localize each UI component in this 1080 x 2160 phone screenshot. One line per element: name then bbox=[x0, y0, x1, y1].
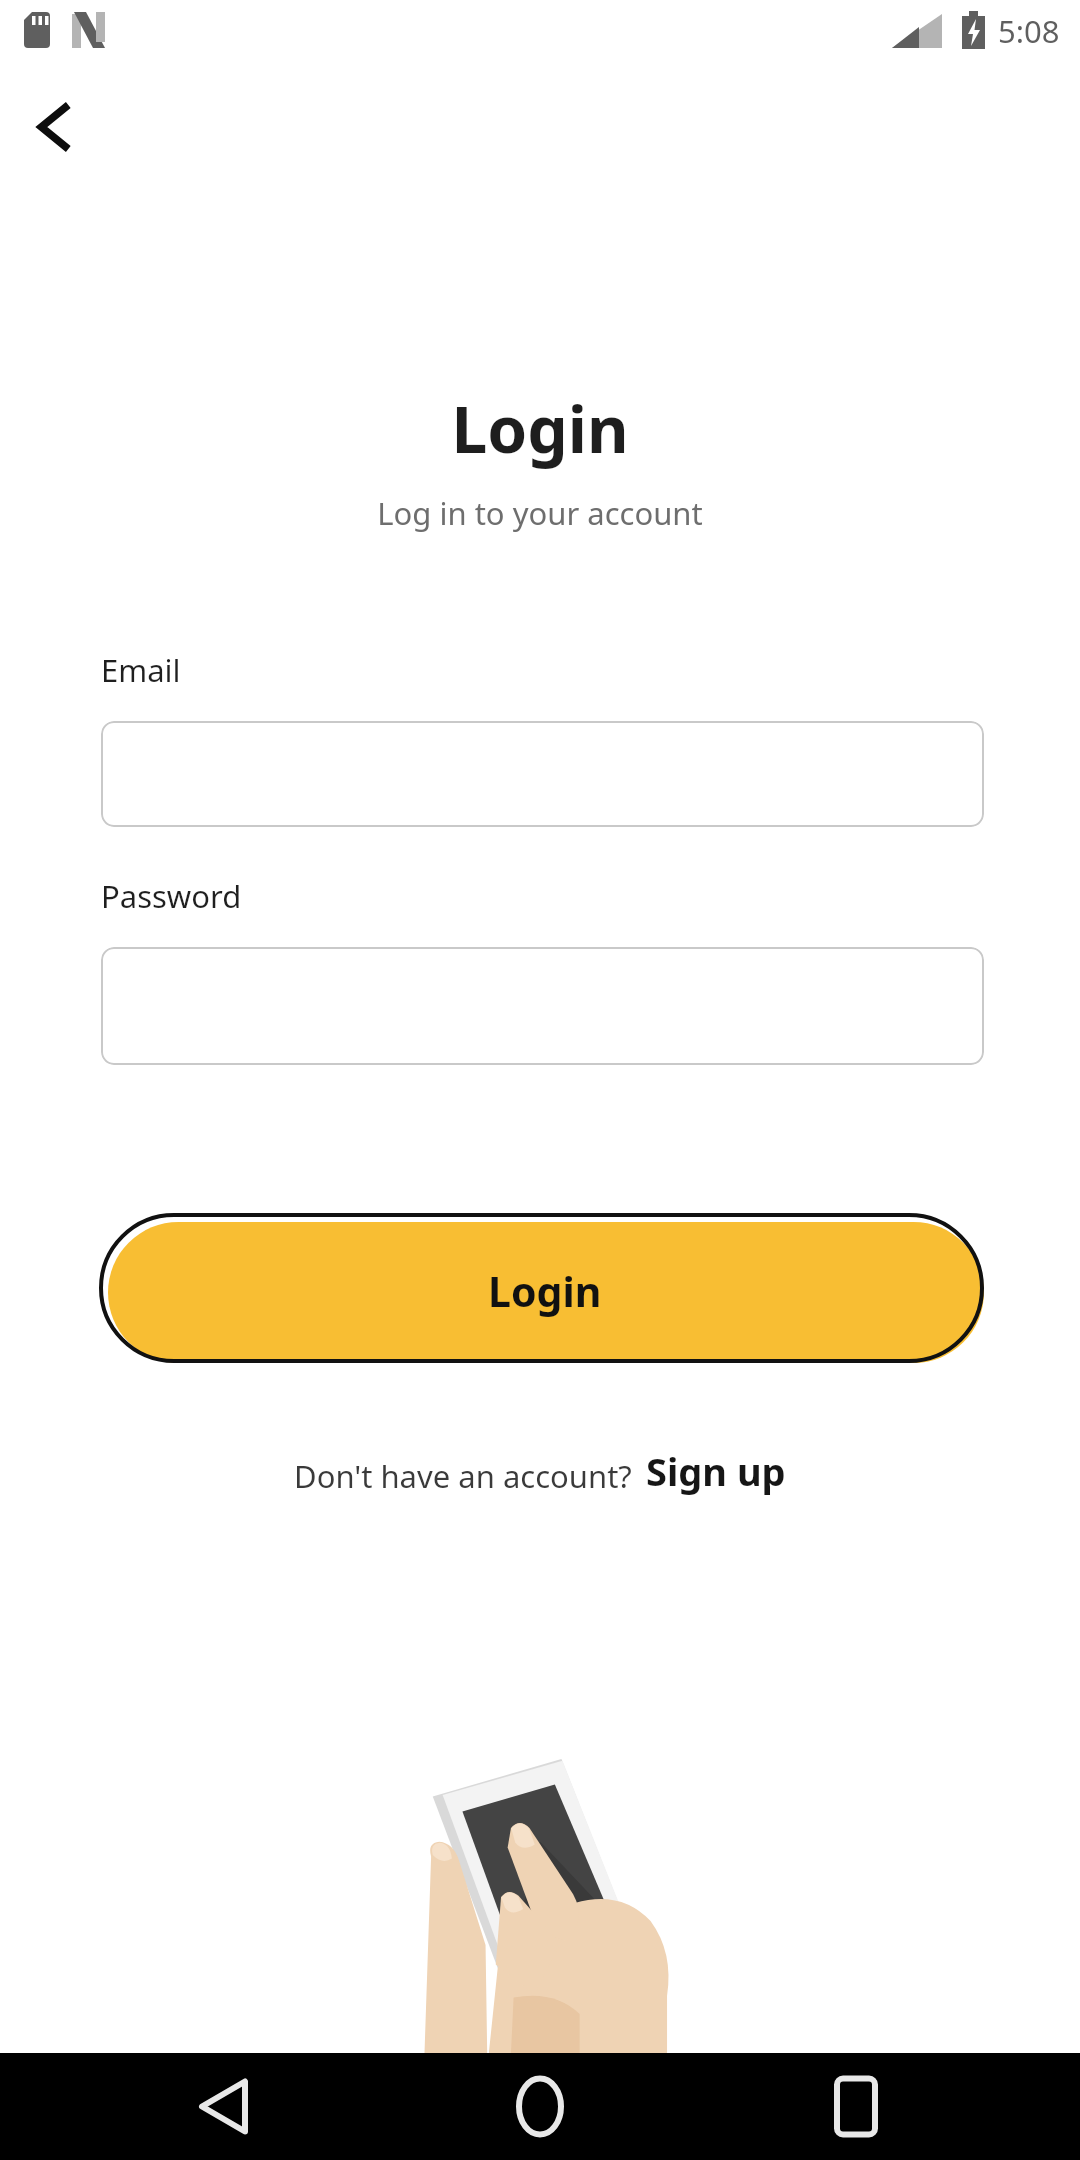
staticText: Password bbox=[101, 875, 242, 917]
button[interactable]: Login bbox=[99, 1213, 984, 1363]
button[interactable]: Back bbox=[12, 84, 98, 170]
button[interactable]: Email input field bbox=[101, 721, 984, 827]
staticText: Don't have an account? bbox=[294, 1455, 632, 1497]
staticText: Login bbox=[0, 385, 1080, 472]
button[interactable]: Recent apps bbox=[790, 2053, 922, 2160]
staticText: Sign up bbox=[646, 1445, 786, 1497]
staticText: 5:08 bbox=[998, 10, 1060, 52]
button[interactable]: Password input field bbox=[101, 947, 984, 1065]
button[interactable]: Home bbox=[474, 2053, 606, 2160]
staticText: Email bbox=[101, 649, 181, 691]
button[interactable]: Back bbox=[160, 2053, 292, 2160]
button[interactable]: Sign up bbox=[646, 1445, 786, 1497]
staticText: Log in to your account bbox=[0, 492, 1080, 534]
staticText: Login bbox=[488, 1263, 602, 1319]
